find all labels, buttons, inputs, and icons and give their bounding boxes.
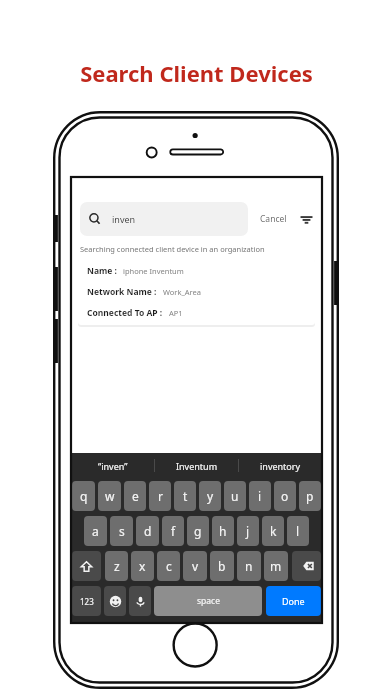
button[interactable]: q — [72, 481, 95, 511]
button[interactable]: k — [262, 516, 284, 546]
button[interactable]: w — [98, 481, 121, 511]
staticText: k — [270, 523, 277, 539]
button[interactable]: Voice input — [129, 586, 151, 616]
staticText: m — [270, 558, 282, 574]
staticText: s — [119, 523, 125, 539]
staticText: t — [183, 488, 188, 504]
button[interactable]: p — [299, 481, 321, 511]
button[interactable]: Emoji — [104, 586, 126, 616]
staticText: b — [218, 558, 226, 574]
button[interactable]: y — [199, 481, 221, 511]
staticText: “inven” — [98, 460, 128, 472]
button[interactable]: “inven” — [71, 460, 154, 472]
button[interactable]: inventory — [239, 460, 322, 472]
staticText: Searching connected client device in an … — [80, 244, 265, 254]
button[interactable]: 123 — [72, 586, 101, 616]
staticText: Inventum — [176, 460, 218, 472]
staticText: y — [207, 488, 214, 504]
staticText: Cancel — [260, 213, 287, 225]
button[interactable]: j — [237, 516, 259, 546]
staticText: Done — [282, 595, 305, 607]
staticText: iphone Inventum — [123, 266, 184, 276]
button[interactable]: Cancel — [258, 209, 289, 229]
staticText: j — [246, 523, 250, 539]
button[interactable]: a — [84, 516, 107, 546]
button[interactable]: c — [157, 551, 180, 581]
staticText: c — [166, 558, 172, 574]
staticText: Search Client Devices — [80, 58, 313, 88]
button[interactable]: g — [187, 516, 209, 546]
staticText: inventory — [260, 460, 301, 472]
button[interactable]: d — [136, 516, 159, 546]
staticText: n — [245, 558, 253, 574]
staticText: Network Name : — [87, 286, 157, 298]
button[interactable]: n — [237, 551, 261, 581]
staticText: h — [219, 523, 227, 539]
staticText: i — [258, 488, 262, 504]
staticText: space — [197, 595, 220, 607]
staticText: Work_Area — [163, 287, 201, 297]
button[interactable]: m — [264, 551, 288, 581]
staticText: o — [281, 488, 289, 504]
staticText: u — [231, 488, 239, 504]
staticText: p — [306, 488, 314, 504]
staticText: e — [132, 488, 139, 504]
staticText: AP1 — [169, 308, 183, 318]
button[interactable]: Inventum — [155, 460, 238, 472]
staticText: g — [194, 523, 202, 539]
button[interactable]: o — [274, 481, 296, 511]
button[interactable]: i — [249, 481, 271, 511]
button[interactable]: Backspace — [292, 551, 321, 581]
staticText: r — [158, 488, 163, 504]
button[interactable]: t — [174, 481, 196, 511]
staticText: x — [139, 558, 146, 574]
button[interactable]: e — [124, 481, 146, 511]
staticText: Connected To AP : — [87, 307, 163, 319]
button[interactable]: Done — [266, 586, 321, 616]
button[interactable]: b — [210, 551, 234, 581]
button[interactable]: z — [105, 551, 128, 581]
staticText: l — [296, 523, 300, 539]
staticText: Name : — [87, 265, 117, 277]
button[interactable]: Shift — [72, 551, 101, 581]
staticText: d — [144, 523, 152, 539]
button[interactable]: inven — [80, 202, 248, 236]
staticText: v — [192, 558, 199, 574]
button[interactable]: space — [154, 586, 262, 616]
button[interactable]: h — [212, 516, 234, 546]
staticText: f — [171, 523, 176, 539]
staticText: q — [80, 488, 88, 504]
button[interactable]: l — [287, 516, 309, 546]
button[interactable]: Name : — [78, 259, 315, 325]
staticText: 123 — [80, 596, 94, 607]
button[interactable]: Filter — [298, 211, 314, 227]
button[interactable]: x — [131, 551, 154, 581]
button[interactable]: r — [149, 481, 171, 511]
staticText: w — [105, 488, 115, 504]
button[interactable]: s — [110, 516, 133, 546]
button[interactable]: f — [162, 516, 184, 546]
button[interactable]: u — [224, 481, 246, 511]
staticText: z — [114, 558, 120, 574]
staticText: inven — [112, 213, 136, 225]
button[interactable]: v — [183, 551, 207, 581]
staticText: a — [92, 523, 99, 539]
